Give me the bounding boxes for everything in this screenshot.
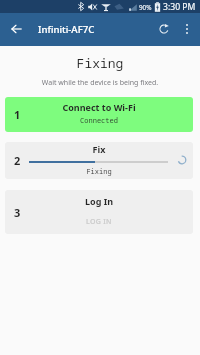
button[interactable]: 1	[5, 97, 193, 132]
other: In progress	[177, 155, 187, 165]
button[interactable]: Navigate up	[6, 19, 26, 39]
staticText: Fixing	[5, 167, 193, 177]
staticText: Infiniti-AF7C	[38, 23, 95, 36]
staticText: Wait while the device is being fixed.	[0, 78, 200, 88]
button[interactable]: 3	[5, 190, 193, 234]
staticText: Connect to Wi-Fi	[5, 101, 193, 113]
staticText: 3	[14, 205, 21, 220]
staticText: Fix	[5, 143, 193, 155]
button[interactable]: 2	[5, 142, 193, 179]
staticText: Connected	[5, 116, 193, 126]
button[interactable]: LOG IN	[5, 215, 193, 228]
button[interactable]: Refresh	[154, 19, 174, 39]
staticText: LOG IN	[86, 217, 112, 227]
button[interactable]: More options	[177, 19, 197, 39]
staticText: 2	[14, 153, 21, 168]
staticText: Fixing	[0, 54, 200, 72]
staticText: 1	[14, 107, 21, 122]
staticText: 90%	[139, 3, 152, 12]
staticText: 3:30 PM	[163, 1, 196, 13]
staticText: Log In	[5, 195, 193, 207]
